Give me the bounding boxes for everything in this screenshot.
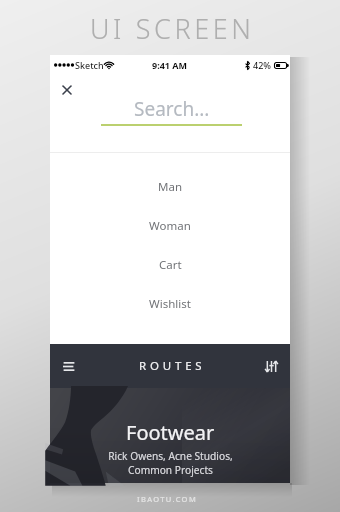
button[interactable]: Menu	[53, 350, 85, 382]
staticText: Cart	[159, 257, 182, 273]
button[interactable]: Wishlist	[50, 284, 290, 323]
button[interactable]: Close	[54, 77, 79, 102]
button[interactable]: Cart	[50, 245, 290, 284]
staticText: Sketch	[75, 59, 104, 71]
staticText: ROUTES	[139, 358, 206, 374]
staticText: Man	[158, 179, 182, 195]
staticText: Woman	[149, 218, 191, 234]
button[interactable]: Man	[50, 167, 290, 206]
button[interactable]: Filter	[255, 350, 287, 382]
staticText: Wishlist	[149, 296, 191, 312]
staticText: Search...	[134, 96, 210, 122]
button[interactable]: Woman	[50, 206, 290, 245]
staticText: UI SCREEN	[90, 10, 255, 47]
staticText: Rick Owens, Acne Studios, Common Project…	[108, 449, 233, 477]
staticText: IBAOTU.COM	[137, 494, 198, 504]
staticText: Footwear	[126, 419, 215, 446]
staticText: 9:41 AM	[152, 59, 188, 71]
staticText: 42%	[253, 59, 271, 71]
